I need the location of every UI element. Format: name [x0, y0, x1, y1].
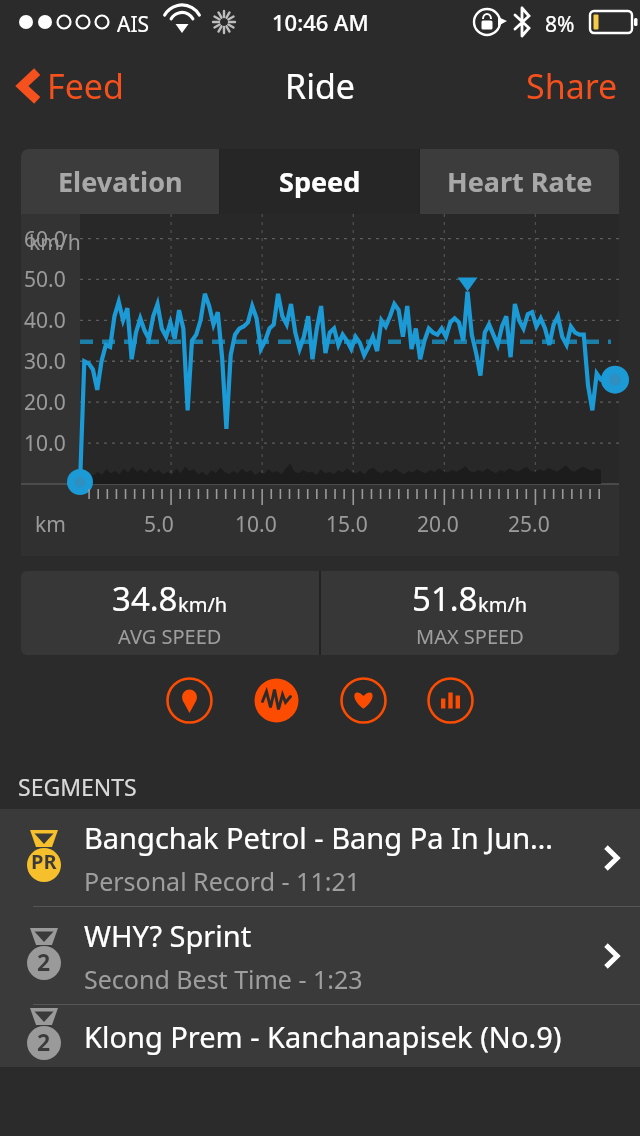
staticText: 30.0: [24, 347, 66, 376]
staticText: Klong Prem - Kanchanapisek (No.9): [84, 1017, 562, 1056]
button[interactable]: 51.8: [321, 571, 619, 655]
button[interactable]: Elevation: [21, 149, 219, 214]
staticText: 51.8: [412, 576, 478, 621]
staticText: Second Best Time - 1:23: [84, 962, 363, 996]
staticText: 5.0: [144, 510, 174, 539]
staticText: Share: [526, 63, 618, 109]
button[interactable]: 2: [0, 907, 640, 1004]
staticText: 20.0: [417, 510, 459, 539]
staticText: 8%: [545, 10, 575, 39]
staticText: km: [35, 510, 66, 539]
button[interactable]: Splits: [427, 677, 474, 724]
button[interactable]: Heart rate: [340, 677, 387, 724]
staticText: 2: [37, 1026, 51, 1057]
staticText: 34.8: [112, 576, 178, 621]
staticText: SEGMENTS: [18, 771, 137, 802]
button[interactable]: Feed: [12, 55, 130, 117]
staticText: 60.0: [24, 225, 66, 254]
staticText: Bangchak Petrol - Bang Pa In Jun…: [84, 818, 553, 857]
button[interactable]: Heart Rate: [420, 149, 619, 214]
staticText: PR: [31, 848, 57, 875]
staticText: Personal Record - 11:21: [84, 864, 361, 898]
button[interactable]: PR: [0, 809, 640, 906]
staticText: AVG SPEED: [118, 623, 222, 650]
staticText: 25.0: [508, 510, 550, 539]
staticText: km/h: [478, 591, 528, 618]
staticText: km/h: [29, 228, 81, 257]
staticText: 50.0: [24, 265, 66, 294]
staticText: Ride: [285, 63, 356, 109]
staticText: Feed: [47, 63, 124, 109]
staticText: 10.0: [235, 510, 277, 539]
staticText: 10.0: [24, 429, 66, 458]
staticText: Speed: [279, 163, 361, 200]
button[interactable]: Speed graph: [253, 677, 300, 724]
button[interactable]: Speed: [220, 149, 419, 214]
button[interactable]: 2: [0, 1005, 640, 1067]
staticText: 40.0: [24, 306, 66, 335]
staticText: 2: [37, 946, 51, 977]
staticText: WHY? Sprint: [84, 916, 252, 955]
button[interactable]: 34.8: [21, 571, 319, 655]
staticText: 20.0: [24, 388, 66, 417]
staticText: Elevation: [58, 163, 183, 200]
button[interactable]: Map: [166, 677, 213, 724]
staticText: MAX SPEED: [416, 623, 524, 650]
staticText: AIS: [117, 10, 150, 39]
staticText: 10:46 AM: [272, 7, 369, 37]
staticText: km/h: [178, 591, 228, 618]
button[interactable]: Share: [520, 55, 624, 117]
staticText: Heart Rate: [447, 163, 593, 200]
staticText: 15.0: [326, 510, 368, 539]
